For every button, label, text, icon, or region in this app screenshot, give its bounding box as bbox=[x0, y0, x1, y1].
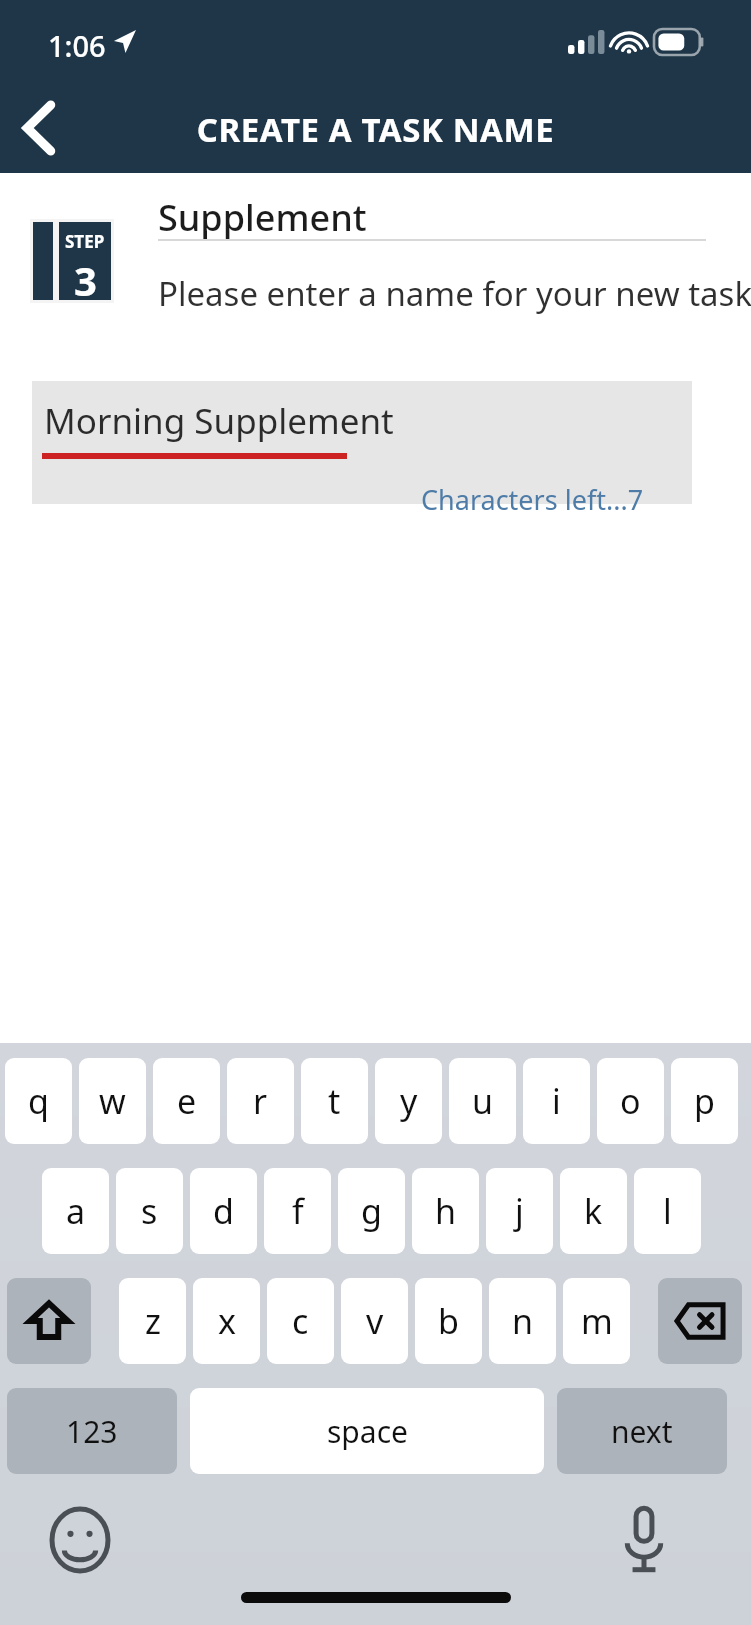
staticText: b bbox=[438, 1298, 459, 1344]
staticText: s bbox=[141, 1188, 158, 1234]
staticText: i bbox=[552, 1078, 561, 1124]
staticText: n bbox=[512, 1298, 534, 1344]
button[interactable]: Emoji bbox=[38, 1498, 122, 1582]
button[interactable]: w bbox=[79, 1058, 146, 1144]
button[interactable]: p bbox=[671, 1058, 738, 1144]
button[interactable]: o bbox=[597, 1058, 664, 1144]
staticText: 1:06 bbox=[48, 26, 106, 65]
button[interactable]: e bbox=[153, 1058, 220, 1144]
button[interactable]: v bbox=[341, 1278, 408, 1364]
button[interactable]: g bbox=[338, 1168, 405, 1254]
button[interactable]: i bbox=[523, 1058, 590, 1144]
staticText: Supplement bbox=[158, 193, 367, 242]
button[interactable]: x bbox=[193, 1278, 260, 1364]
staticText: f bbox=[292, 1188, 304, 1234]
staticText: 123 bbox=[66, 1411, 118, 1452]
staticText: Please enter a name for your new task bbox=[158, 271, 751, 316]
button[interactable]: Backspace bbox=[658, 1278, 742, 1364]
button[interactable]: f bbox=[264, 1168, 331, 1254]
staticText: space bbox=[327, 1411, 408, 1452]
staticText: a bbox=[66, 1188, 86, 1234]
button[interactable]: u bbox=[449, 1058, 516, 1144]
button[interactable]: a bbox=[42, 1168, 109, 1254]
staticText: j bbox=[515, 1188, 524, 1234]
button[interactable]: z bbox=[119, 1278, 186, 1364]
button[interactable]: j bbox=[486, 1168, 553, 1254]
button[interactable]: Voice input bbox=[602, 1498, 686, 1582]
staticText: v bbox=[366, 1298, 384, 1344]
staticText: Morning Supplement bbox=[44, 397, 394, 445]
button[interactable]: q bbox=[5, 1058, 72, 1144]
staticText: u bbox=[472, 1078, 494, 1124]
staticText: o bbox=[620, 1078, 641, 1124]
button[interactable]: d bbox=[190, 1168, 257, 1254]
staticText: q bbox=[28, 1078, 49, 1124]
button[interactable]: c bbox=[267, 1278, 334, 1364]
staticText: e bbox=[177, 1078, 197, 1124]
staticText: h bbox=[435, 1188, 457, 1234]
button[interactable]: Shift bbox=[7, 1278, 91, 1364]
staticText: w bbox=[99, 1078, 126, 1124]
button[interactable]: r bbox=[227, 1058, 294, 1144]
staticText: next bbox=[611, 1411, 673, 1452]
staticText: l bbox=[663, 1188, 672, 1234]
button[interactable]: y bbox=[375, 1058, 442, 1144]
button[interactable]: 123 bbox=[7, 1388, 177, 1474]
staticText: STEP bbox=[65, 230, 105, 253]
staticText: m bbox=[581, 1298, 613, 1344]
staticText: t bbox=[328, 1078, 341, 1124]
button[interactable]: Morning Supplement bbox=[32, 381, 692, 504]
button[interactable]: t bbox=[301, 1058, 368, 1144]
staticText: p bbox=[694, 1078, 715, 1124]
button[interactable]: s bbox=[116, 1168, 183, 1254]
button[interactable]: n bbox=[489, 1278, 556, 1364]
staticText: Characters left...7 bbox=[421, 481, 644, 518]
button[interactable]: space bbox=[190, 1388, 544, 1474]
button[interactable]: l bbox=[634, 1168, 701, 1254]
staticText: x bbox=[218, 1298, 236, 1344]
staticText: y bbox=[400, 1078, 418, 1124]
button[interactable]: m bbox=[563, 1278, 630, 1364]
staticText: z bbox=[145, 1298, 161, 1344]
button[interactable]: b bbox=[415, 1278, 482, 1364]
staticText: CREATE A TASK NAME bbox=[0, 107, 751, 152]
button[interactable]: k bbox=[560, 1168, 627, 1254]
button[interactable]: next bbox=[557, 1388, 727, 1474]
staticText: k bbox=[584, 1188, 603, 1234]
staticText: d bbox=[213, 1188, 234, 1234]
button[interactable]: h bbox=[412, 1168, 479, 1254]
staticText: 3 bbox=[74, 253, 97, 300]
staticText: c bbox=[292, 1298, 309, 1344]
staticText: r bbox=[253, 1078, 268, 1124]
button[interactable]: Back bbox=[0, 88, 78, 168]
staticText: g bbox=[361, 1188, 382, 1234]
